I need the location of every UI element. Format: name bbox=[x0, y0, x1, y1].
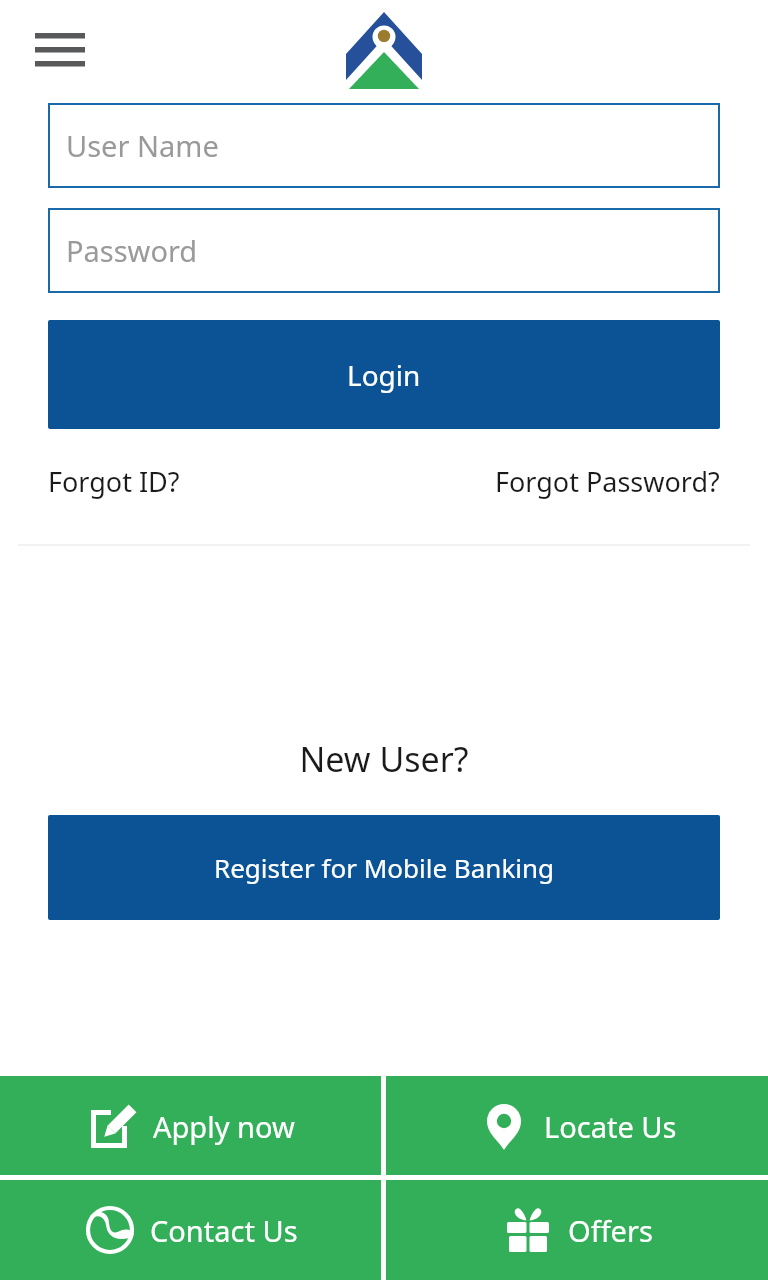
button[interactable]: Apply now bbox=[0, 1076, 381, 1175]
staticText: Contact Us bbox=[150, 1211, 298, 1250]
staticText: Locate Us bbox=[544, 1107, 677, 1146]
button[interactable]: Forgot Password? bbox=[495, 457, 720, 506]
button[interactable]: Contact Us bbox=[0, 1180, 381, 1280]
staticText: Forgot ID? bbox=[48, 463, 180, 500]
staticText: Apply now bbox=[153, 1107, 295, 1146]
button[interactable]: Locate Us bbox=[386, 1076, 768, 1175]
staticText: Register for Mobile Banking bbox=[214, 850, 555, 885]
staticText: Forgot Password? bbox=[495, 463, 720, 500]
staticText: Offers bbox=[568, 1211, 653, 1250]
button[interactable]: Register for Mobile Banking bbox=[48, 815, 720, 920]
button[interactable]: Login bbox=[48, 320, 720, 429]
staticText: Login bbox=[347, 356, 421, 394]
button[interactable]: Forgot ID? bbox=[48, 457, 180, 506]
staticText: Password bbox=[66, 231, 198, 270]
button[interactable]: User Name bbox=[48, 103, 720, 188]
button[interactable]: Password bbox=[48, 208, 720, 293]
button[interactable]: Offers bbox=[386, 1180, 768, 1280]
button[interactable]: Menu bbox=[26, 22, 94, 82]
staticText: User Name bbox=[66, 126, 219, 165]
staticText: New User? bbox=[0, 736, 768, 782]
